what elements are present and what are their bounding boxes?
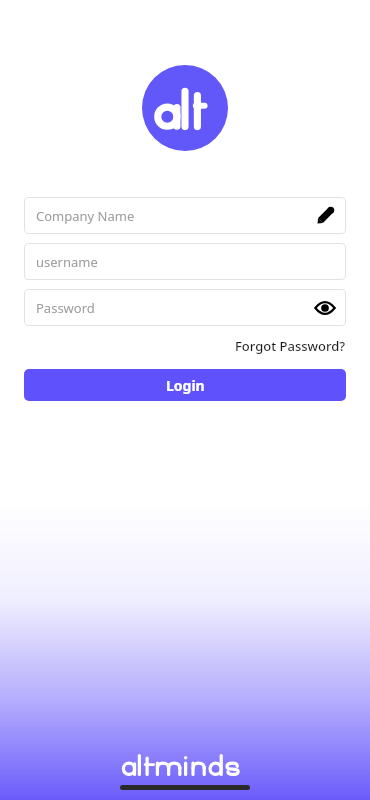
staticText: Company Name <box>36 207 135 225</box>
button[interactable]: Login <box>24 369 346 401</box>
staticText: Forgot Password? <box>235 337 346 355</box>
button[interactable]: Show password <box>314 297 336 319</box>
button[interactable]: Company Name <box>24 197 346 234</box>
button[interactable]: username <box>24 243 346 280</box>
staticText: Login <box>166 376 205 395</box>
button[interactable]: Edit company name <box>314 205 336 227</box>
button[interactable]: Password <box>24 289 346 326</box>
staticText: Password <box>36 299 95 317</box>
button[interactable]: Forgot Password? <box>227 326 346 359</box>
staticText: username <box>36 253 98 271</box>
